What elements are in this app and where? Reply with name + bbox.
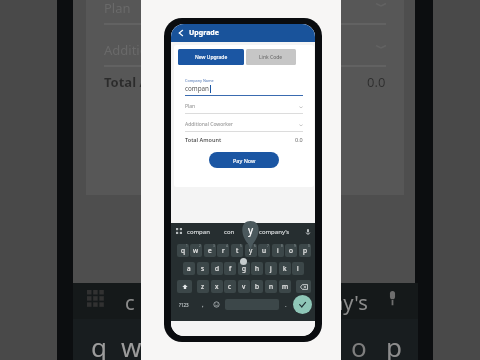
button[interactable]: u <box>258 244 270 257</box>
staticText: a <box>187 264 191 273</box>
button[interactable]: x <box>211 280 223 293</box>
button[interactable]: w <box>190 244 202 257</box>
button[interactable]: z <box>197 280 209 293</box>
staticText: q <box>91 329 107 360</box>
staticText: z <box>201 282 205 291</box>
staticText: 5 <box>240 244 242 248</box>
staticText: Pay Now <box>233 157 256 164</box>
staticText: 4 <box>226 244 228 248</box>
staticText: 1 <box>186 244 188 248</box>
button[interactable]: k <box>279 262 291 275</box>
staticText: n <box>269 282 274 291</box>
staticText: y <box>248 223 254 237</box>
button[interactable]: d <box>211 262 223 275</box>
staticText: 0.0 <box>295 136 303 143</box>
staticText: y <box>249 246 253 255</box>
staticText: ?123 <box>179 302 189 308</box>
button[interactable]: New Upgrade <box>178 49 244 65</box>
button[interactable]: n <box>265 280 277 293</box>
staticText: 3 <box>213 244 215 248</box>
button[interactable]: g <box>238 262 250 275</box>
staticText: 8 <box>281 244 283 248</box>
staticText: s <box>201 264 205 273</box>
staticText: 7 <box>267 244 269 248</box>
staticText: . <box>285 301 287 309</box>
staticText: g <box>242 264 246 273</box>
button[interactable]: e <box>204 244 216 257</box>
staticText: 0 <box>308 244 310 248</box>
staticText: Additional Coworker <box>185 121 233 128</box>
staticText: u <box>262 246 267 255</box>
staticText: p <box>386 329 402 360</box>
staticText: c <box>228 282 232 291</box>
staticText: Total Amount <box>185 136 222 143</box>
staticText: t <box>236 246 239 255</box>
button[interactable]: Keyboard toolbar <box>176 228 183 235</box>
staticText: m <box>282 282 289 291</box>
staticText: w <box>121 329 142 360</box>
button[interactable]: m <box>279 280 291 293</box>
button[interactable]: Backspace <box>296 280 311 293</box>
staticText: i <box>277 246 279 255</box>
staticText: h <box>255 264 260 273</box>
button[interactable]: Link Code <box>246 49 296 65</box>
staticText: k <box>283 264 287 273</box>
staticText: j <box>270 264 272 273</box>
button[interactable]: Pay Now <box>209 152 279 168</box>
staticText: p <box>303 246 307 255</box>
button[interactable]: Voice input <box>304 228 312 236</box>
staticText: Upgrade <box>189 28 219 38</box>
staticText: b <box>255 282 259 291</box>
button[interactable]: o <box>285 244 297 257</box>
button[interactable]: v <box>238 280 250 293</box>
button[interactable]: h <box>251 262 263 275</box>
staticText: Plan <box>185 103 196 110</box>
staticText: r <box>222 246 225 255</box>
button[interactable]: Period <box>281 298 291 311</box>
button[interactable]: r <box>217 244 229 257</box>
staticText: o <box>289 246 293 255</box>
staticText: 0.0 <box>367 73 386 91</box>
staticText: c <box>125 289 135 316</box>
staticText: f <box>229 264 232 273</box>
button[interactable]: l <box>292 262 304 275</box>
button[interactable]: Shift <box>177 280 192 293</box>
button[interactable]: a <box>183 262 195 275</box>
staticText: Total Amount <box>104 73 192 91</box>
staticText: e <box>208 246 212 255</box>
staticText: v <box>242 282 246 291</box>
staticText: company's <box>259 228 290 236</box>
staticText: q <box>181 246 185 255</box>
button[interactable]: Symbols <box>175 298 192 311</box>
button[interactable]: f <box>224 262 236 275</box>
staticText: 2 <box>199 244 201 248</box>
button[interactable]: y <box>245 244 257 257</box>
button[interactable]: b <box>251 280 263 293</box>
staticText: d <box>215 264 219 273</box>
staticText: con <box>224 228 235 236</box>
button[interactable]: c <box>224 280 236 293</box>
staticText: 9 <box>294 244 296 248</box>
button[interactable]: s <box>197 262 209 275</box>
button[interactable]: j <box>265 262 277 275</box>
button[interactable]: p <box>299 244 311 257</box>
button[interactable]: Back <box>175 27 187 39</box>
staticText: Plan <box>104 0 131 17</box>
button[interactable]: Comma <box>198 298 208 311</box>
staticText: x <box>215 282 219 291</box>
button[interactable]: i <box>272 244 284 257</box>
button[interactable]: Emoji <box>211 298 222 311</box>
button[interactable]: t <box>231 244 243 257</box>
staticText: Company Name <box>185 78 214 83</box>
staticText: w <box>193 246 199 255</box>
staticText: Additional Coworker <box>104 41 229 59</box>
staticText: , <box>202 301 204 309</box>
button[interactable]: Enter <box>293 295 312 314</box>
staticText: New Upgrade <box>195 54 228 61</box>
staticText: l <box>297 264 299 273</box>
staticText: compan <box>185 84 210 93</box>
staticText: o <box>351 329 367 360</box>
staticText: ny's <box>331 289 368 316</box>
button[interactable]: q <box>177 244 189 257</box>
